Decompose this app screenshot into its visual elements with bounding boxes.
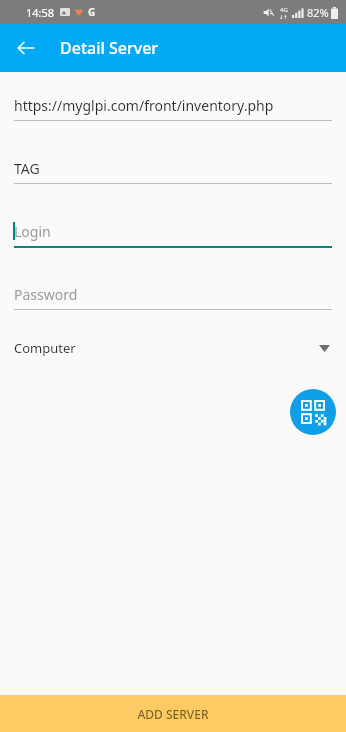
staticText: 14:58 [26,5,55,20]
button[interactable]: Scan QR code [290,389,336,435]
staticText: Login [14,222,51,241]
staticText: TAG [14,159,40,178]
button[interactable]: https://myglpi.com/front/inventory.php [0,90,346,121]
staticText: ADD SERVER [137,706,209,722]
staticText: 4G [280,6,288,14]
button[interactable]: Password [0,279,346,310]
staticText: ↓↑ [279,14,288,20]
button[interactable]: ADD SERVER [0,695,346,732]
button[interactable]: Login [0,216,346,248]
staticText: Password [14,285,78,304]
staticText: G [88,5,96,19]
button[interactable]: Back [8,30,44,66]
button[interactable]: Computer [0,334,346,362]
button[interactable]: TAG [0,153,346,184]
staticText: https://myglpi.com/front/inventory.php [14,96,274,115]
staticText: Detail Server [60,37,159,59]
staticText: 82% [307,5,329,20]
staticText: Computer [14,339,76,357]
